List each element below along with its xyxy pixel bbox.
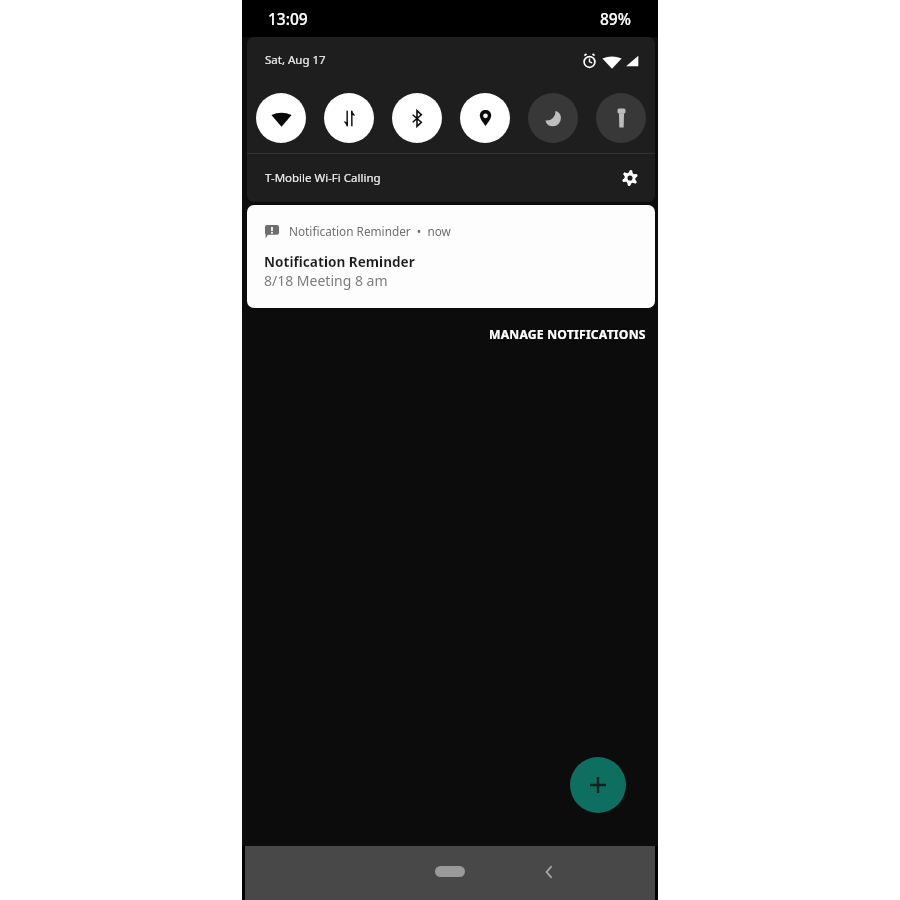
button[interactable]: Bluetooth <box>392 93 442 143</box>
staticText: 89% <box>600 8 631 29</box>
staticText: Notification Reminder • now <box>289 223 451 239</box>
button[interactable]: Add <box>570 757 626 813</box>
button[interactable]: MANAGE NOTIFICATIONS <box>485 322 650 347</box>
button[interactable]: T-Mobile Wi-Fi Calling <box>247 154 655 202</box>
button[interactable]: Home <box>435 866 465 877</box>
button[interactable]: Location <box>460 93 510 143</box>
staticText: T-Mobile Wi-Fi Calling <box>265 170 381 186</box>
button[interactable]: Do not disturb <box>528 93 578 143</box>
button[interactable]: Mobile data <box>324 93 374 143</box>
staticText: Notification Reminder <box>264 252 415 271</box>
staticText: MANAGE NOTIFICATIONS <box>489 326 646 343</box>
staticText: 8/18 Meeting 8 am <box>264 271 388 290</box>
button[interactable]: Back <box>533 856 565 888</box>
staticText: 13:09 <box>268 8 308 29</box>
button[interactable]: Settings <box>615 163 645 193</box>
staticText: Sat, Aug 17 <box>265 52 326 68</box>
button[interactable]: Wi-Fi <box>256 93 306 143</box>
button[interactable]: Flashlight <box>596 93 646 143</box>
button[interactable]: Notification Reminder • now <box>247 205 655 308</box>
